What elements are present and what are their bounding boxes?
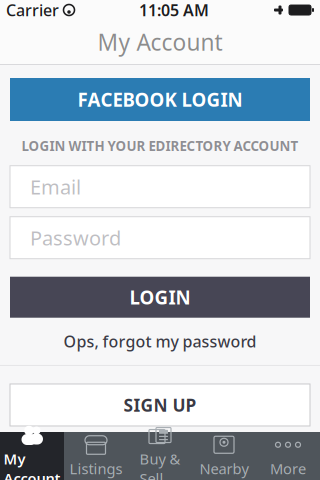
staticText: More <box>270 459 306 478</box>
staticText: LOGIN <box>129 285 190 310</box>
staticText: Password <box>30 224 121 251</box>
button[interactable]: Nearby <box>192 432 256 480</box>
staticText: Buy & Sell <box>139 449 180 480</box>
button[interactable]: My Account <box>0 432 64 480</box>
staticText: Email <box>30 173 81 200</box>
staticText: SIGN UP <box>123 393 196 416</box>
staticText: Ops, forgot my password <box>63 331 256 352</box>
button[interactable]: Listings <box>64 432 128 480</box>
staticText: Listings <box>69 459 122 478</box>
button[interactable]: Ops, forgot my password <box>49 324 270 359</box>
button[interactable]: SIGN UP <box>10 384 310 426</box>
staticText: My Account <box>97 27 222 57</box>
button[interactable]: Email <box>10 166 310 208</box>
button[interactable]: More <box>256 432 320 480</box>
staticText: Nearby <box>199 459 248 478</box>
staticText: FACEBOOK LOGIN <box>77 87 242 112</box>
button[interactable]: LOGIN <box>10 277 310 318</box>
staticText: 11:05 AM <box>139 0 209 21</box>
button[interactable]: Password <box>10 217 310 259</box>
staticText: My Account <box>3 449 60 480</box>
staticText: LOGIN WITH YOUR EDIRECTORY ACCOUNT <box>21 137 298 155</box>
button[interactable]: FACEBOOK LOGIN <box>10 78 310 121</box>
button[interactable]: Buy & Sell <box>128 432 192 480</box>
staticText: Carrier <box>6 0 59 21</box>
